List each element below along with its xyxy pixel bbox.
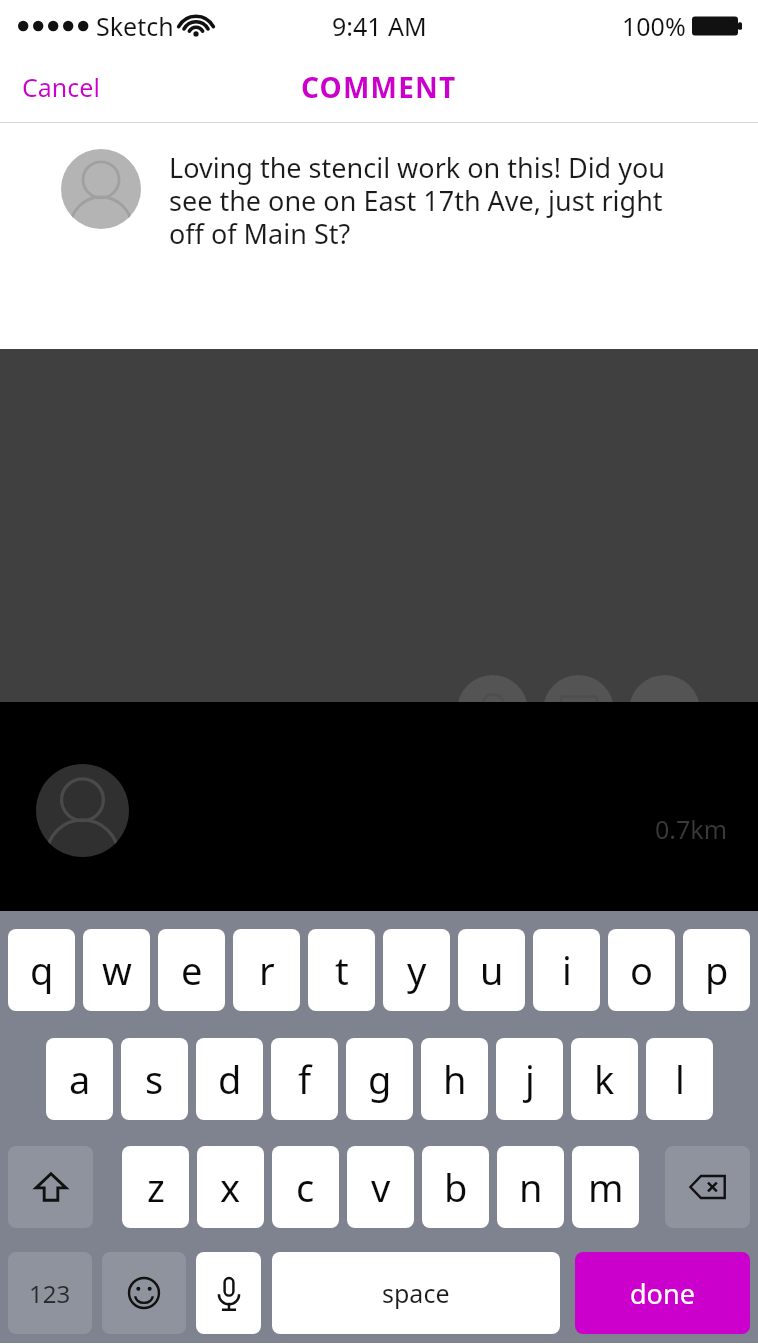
staticText: Loving the stencil work on this! Did you…: [169, 149, 669, 252]
button[interactable]: Backspace: [665, 1146, 750, 1228]
button[interactable]: More options: [629, 675, 700, 746]
staticText: e: [181, 944, 203, 996]
staticText: h: [443, 1053, 467, 1105]
button[interactable]: y: [383, 929, 450, 1011]
button[interactable]: Profile: [36, 764, 129, 857]
button[interactable]: m: [572, 1146, 639, 1228]
staticText: m: [588, 1161, 624, 1213]
button[interactable]: u: [458, 929, 525, 1011]
staticText: d: [218, 1053, 242, 1105]
staticText: 9:41 AM: [332, 9, 427, 43]
button[interactable]: l: [646, 1038, 713, 1120]
staticText: r: [259, 944, 275, 996]
staticText: f: [298, 1053, 312, 1105]
button[interactable]: n: [497, 1146, 564, 1228]
staticText: Sketch: [96, 9, 174, 43]
staticText: y: [407, 944, 427, 996]
staticText: w: [102, 944, 132, 996]
button[interactable]: h: [421, 1038, 488, 1120]
button[interactable]: 123: [8, 1252, 92, 1334]
staticText: c: [296, 1161, 315, 1213]
staticText: k: [594, 1053, 615, 1105]
staticText: 100%: [622, 9, 686, 43]
button[interactable]: k: [571, 1038, 638, 1120]
button[interactable]: w: [83, 929, 150, 1011]
staticText: 123: [29, 1277, 71, 1310]
button[interactable]: s: [121, 1038, 188, 1120]
staticText: space: [382, 1276, 450, 1310]
staticText: a: [69, 1053, 91, 1105]
button[interactable]: v: [347, 1146, 414, 1228]
button[interactable]: d: [196, 1038, 263, 1120]
button[interactable]: b: [422, 1146, 489, 1228]
staticText: g: [368, 1053, 392, 1105]
staticText: q: [30, 944, 54, 996]
staticText: s: [145, 1053, 164, 1105]
button[interactable]: g: [346, 1038, 413, 1120]
staticText: b: [444, 1161, 468, 1213]
button[interactable]: Cancel: [0, 60, 122, 114]
button[interactable]: j: [496, 1038, 563, 1120]
staticText: Cancel: [22, 70, 100, 104]
staticText: done: [630, 1275, 695, 1312]
button[interactable]: f: [271, 1038, 338, 1120]
staticText: u: [480, 944, 504, 996]
button[interactable]: Shift: [8, 1146, 93, 1228]
staticText: o: [630, 944, 653, 996]
button[interactable]: Dictation: [196, 1252, 261, 1334]
staticText: l: [675, 1053, 685, 1105]
button[interactable]: z: [122, 1146, 189, 1228]
button[interactable]: e: [158, 929, 225, 1011]
staticText: p: [705, 944, 729, 996]
button[interactable]: done: [575, 1252, 750, 1334]
staticText: COMMENT: [301, 68, 457, 106]
button[interactable]: r: [233, 929, 300, 1011]
staticText: i: [562, 944, 572, 996]
button[interactable]: a: [46, 1038, 113, 1120]
button[interactable]: q: [8, 929, 75, 1011]
staticText: z: [147, 1161, 165, 1213]
button[interactable]: Comments: [543, 675, 614, 746]
button[interactable]: x: [197, 1146, 264, 1228]
staticText: j: [525, 1053, 535, 1105]
staticText: v: [371, 1161, 391, 1213]
button[interactable]: c: [272, 1146, 339, 1228]
button[interactable]: p: [683, 929, 750, 1011]
button[interactable]: space: [272, 1252, 560, 1334]
staticText: x: [220, 1161, 241, 1213]
staticText: n: [519, 1161, 543, 1213]
button[interactable]: i: [533, 929, 600, 1011]
button[interactable]: t: [308, 929, 375, 1011]
button[interactable]: Emoji: [102, 1252, 186, 1334]
staticText: t: [335, 944, 349, 996]
staticText: 0.7km: [655, 812, 728, 846]
button[interactable]: o: [608, 929, 675, 1011]
button[interactable]: Location: [457, 675, 528, 746]
